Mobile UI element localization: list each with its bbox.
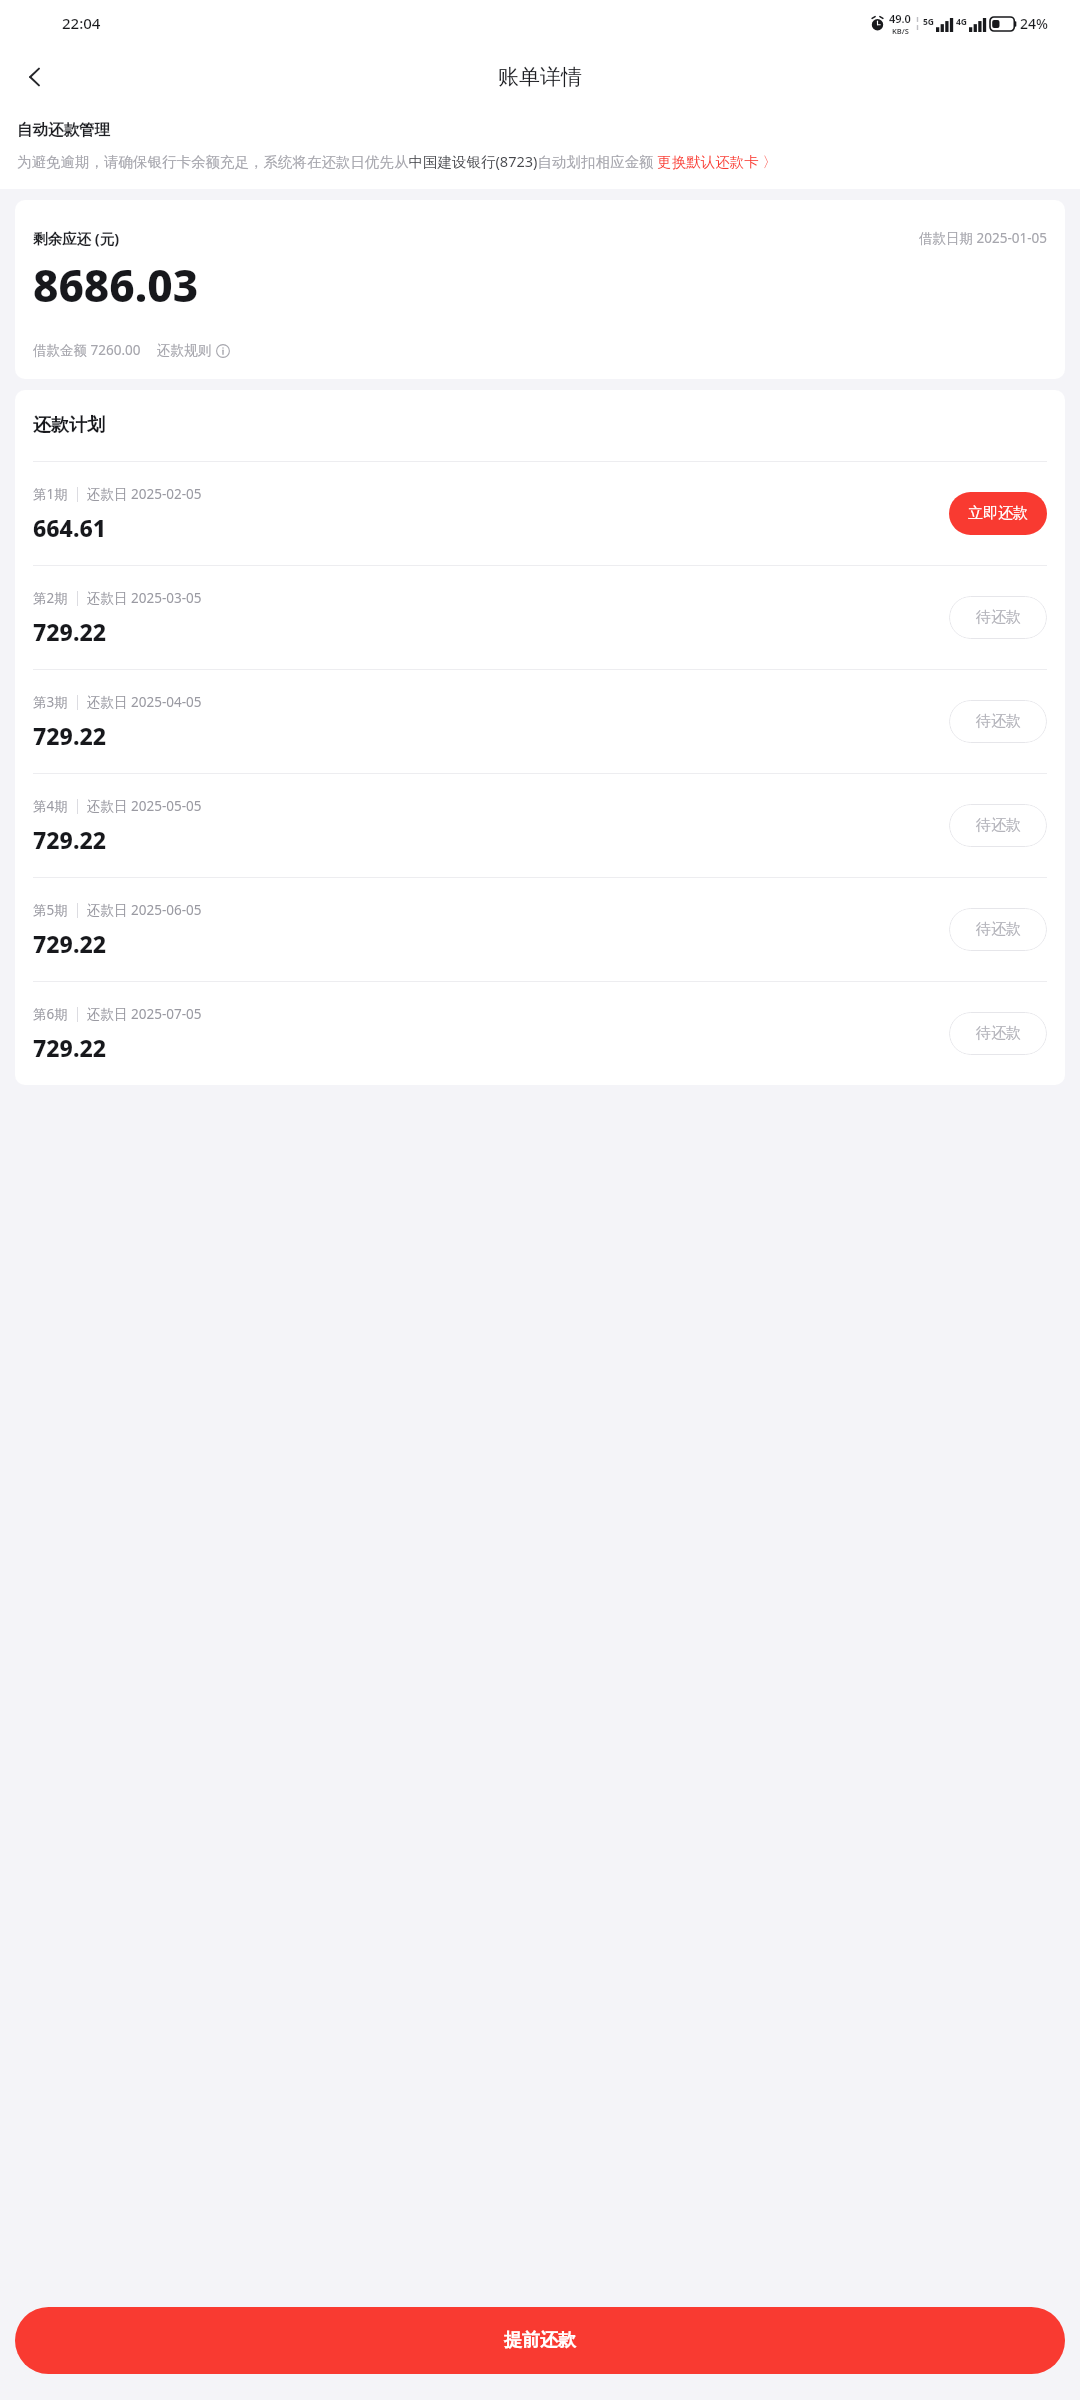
staticText: 剩余应还 (元) xyxy=(33,228,120,248)
button[interactable]: 第6期 xyxy=(15,982,1065,1085)
button[interactable]: 还款规则 xyxy=(157,342,230,359)
staticText: 729.22 xyxy=(33,616,107,647)
button[interactable]: 第5期 xyxy=(15,878,1065,981)
staticText: 账单详情 xyxy=(498,64,582,90)
staticText: 24% xyxy=(1020,14,1048,33)
staticText: 还款日 2025-02-05 xyxy=(87,485,202,503)
staticText: 待还款 xyxy=(976,920,1021,939)
staticText: 第4期 xyxy=(33,797,68,815)
button[interactable]: 待还款 xyxy=(949,700,1047,743)
staticText: 还款计划 xyxy=(33,414,105,437)
staticText: KB/S xyxy=(892,26,909,36)
staticText: 自动还款管理 xyxy=(17,120,110,140)
button[interactable]: 待还款 xyxy=(949,908,1047,951)
staticText: 为避免逾期，请确保银行卡余额充足，系统将在还款日优先从中国建设银行(8723)自… xyxy=(17,151,777,171)
staticText: 729.22 xyxy=(33,824,107,855)
button[interactable]: 立即还款 xyxy=(949,492,1047,535)
staticText: 5G xyxy=(923,16,935,28)
staticText: 8686.03 xyxy=(33,255,199,315)
button[interactable]: 第4期 xyxy=(15,774,1065,877)
staticText: 还款日 2025-06-05 xyxy=(87,901,202,919)
staticText: 还款日 2025-05-05 xyxy=(87,797,202,815)
staticText: 第1期 xyxy=(33,485,68,503)
staticText: 还款日 2025-04-05 xyxy=(87,693,202,711)
button[interactable]: 待还款 xyxy=(949,804,1047,847)
staticText: 待还款 xyxy=(976,712,1021,731)
button[interactable]: 第3期 xyxy=(15,670,1065,773)
button[interactable]: 提前还款 xyxy=(15,2307,1065,2374)
button[interactable]: 第1期 xyxy=(15,462,1065,565)
staticText: 还款日 2025-03-05 xyxy=(87,589,202,607)
button[interactable]: 第2期 xyxy=(15,566,1065,669)
staticText: 第6期 xyxy=(33,1005,68,1023)
staticText: 729.22 xyxy=(33,720,107,751)
staticText: 22:04 xyxy=(62,13,101,33)
staticText: 729.22 xyxy=(33,1032,107,1063)
staticText: 4G xyxy=(956,16,968,28)
button[interactable]: 待还款 xyxy=(949,1012,1047,1055)
staticText: 664.61 xyxy=(33,512,107,543)
staticText: 第3期 xyxy=(33,693,68,711)
staticText: 借款金额 7260.00 xyxy=(33,341,141,359)
staticText: 第2期 xyxy=(33,589,68,607)
staticText: 还款规则 xyxy=(157,342,211,359)
button[interactable]: Back xyxy=(12,54,58,100)
staticText: 提前还款 xyxy=(504,2329,576,2352)
staticText: 第5期 xyxy=(33,901,68,919)
staticText: 49.0 xyxy=(889,11,911,26)
staticText: 待还款 xyxy=(976,608,1021,627)
staticText: 待还款 xyxy=(976,816,1021,835)
staticText: 待还款 xyxy=(976,1024,1021,1043)
staticText: 立即还款 xyxy=(968,504,1028,523)
staticText: 还款日 2025-07-05 xyxy=(87,1005,202,1023)
staticText: 借款日期 2025-01-05 xyxy=(919,229,1047,247)
staticText: 729.22 xyxy=(33,928,107,959)
button[interactable]: 待还款 xyxy=(949,596,1047,639)
